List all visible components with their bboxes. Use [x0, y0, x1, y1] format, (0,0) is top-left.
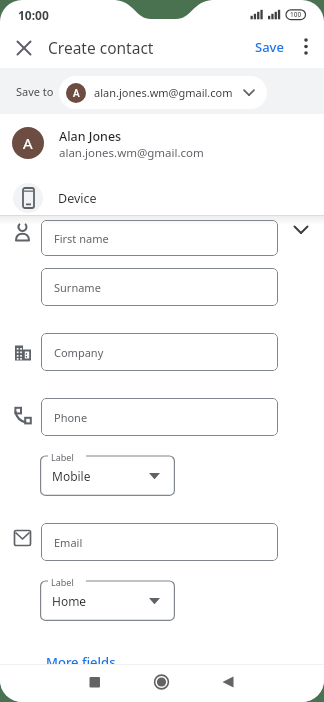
staticText: Mobile [52, 468, 91, 484]
staticText: Save to [16, 84, 54, 99]
button[interactable]: A [59, 76, 267, 109]
staticText: Phone [54, 410, 88, 425]
button[interactable]: Label [40, 452, 175, 496]
button[interactable]: Company [41, 333, 278, 371]
staticText: alan.jones.wm@gmail.com [94, 85, 233, 100]
staticText: Label [51, 576, 74, 588]
staticText: Save [255, 38, 284, 56]
staticText: First name [54, 231, 109, 246]
button[interactable] [80, 667, 110, 697]
button[interactable]: A [0, 118, 324, 168]
staticText: Label [51, 451, 74, 463]
staticText: Email [54, 535, 83, 550]
button[interactable] [146, 667, 176, 697]
staticText: Device [58, 190, 97, 207]
staticText: 10:00 [18, 7, 49, 23]
staticText: A [73, 86, 80, 100]
staticText: alan.jones.wm@gmail.com [59, 145, 204, 161]
staticText: Company [54, 345, 104, 360]
button[interactable] [295, 32, 317, 60]
button[interactable] [9, 33, 39, 63]
staticText: Home [52, 593, 87, 609]
staticText: Surname [54, 280, 101, 295]
staticText: A [23, 133, 33, 153]
button[interactable]: More fields [46, 653, 121, 673]
button[interactable]: Email [41, 523, 278, 561]
button[interactable]: First name [41, 220, 278, 256]
button[interactable] [213, 667, 243, 697]
button[interactable]: Device [0, 172, 324, 216]
button[interactable]: Label [40, 577, 175, 621]
button[interactable]: Save [248, 36, 290, 58]
staticText: More fields [46, 653, 116, 671]
button[interactable]: Surname [41, 268, 278, 306]
staticText: 100 [290, 10, 302, 19]
button[interactable]: Phone [41, 398, 278, 436]
staticText: Create contact [48, 37, 154, 58]
staticText: Alan Jones [59, 128, 122, 145]
